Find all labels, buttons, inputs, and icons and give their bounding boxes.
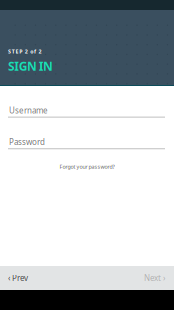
button[interactable]: ‹ Prev: [0, 266, 28, 290]
staticText: Username: [9, 105, 48, 116]
staticText: SIGN IN: [8, 58, 53, 74]
staticText: Password: [9, 137, 45, 147]
staticText: STEP 2 of 2: [8, 48, 41, 55]
staticText: Forgot your password?: [59, 163, 114, 170]
staticText: Next ›: [144, 273, 165, 283]
staticText: ‹ Prev: [8, 273, 28, 283]
button[interactable]: Next ›: [144, 266, 174, 290]
button[interactable]: Forgot your password?: [0, 163, 174, 170]
